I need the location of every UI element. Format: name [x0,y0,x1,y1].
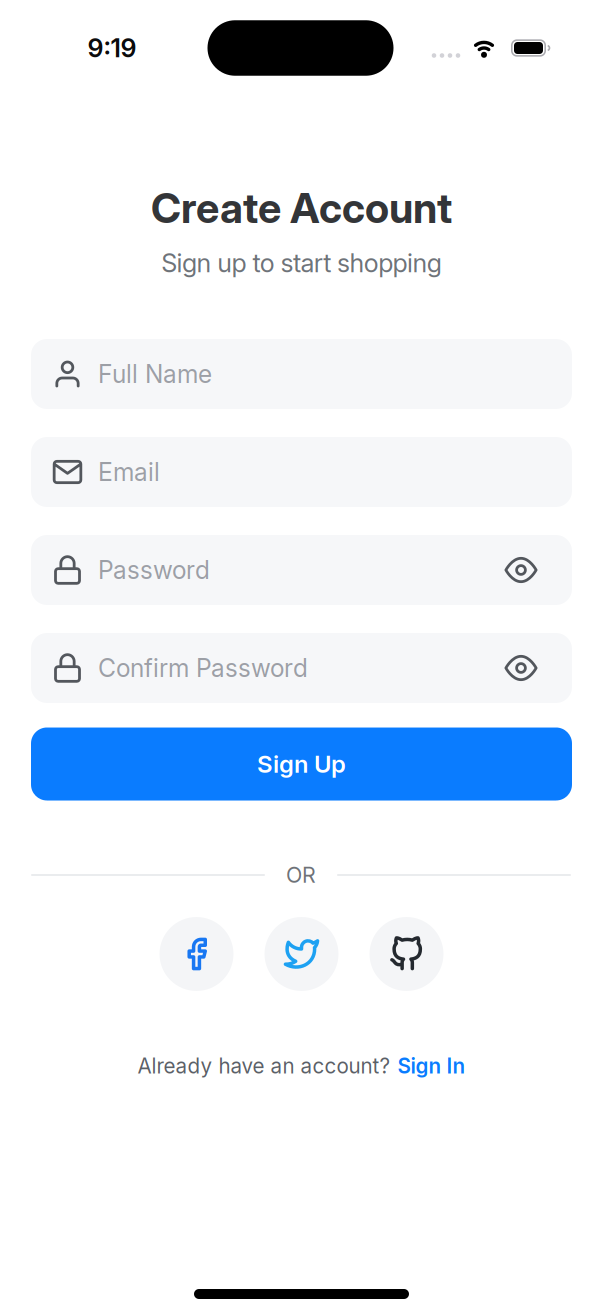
button[interactable]: Full Name [31,339,572,409]
button[interactable]: Sign up with Facebook [159,917,233,991]
staticText: Full Name [98,359,212,389]
button[interactable]: Sign up with Twitter [264,917,338,991]
staticText: OR [286,862,316,888]
staticText: Already have an account? [137,1053,390,1078]
staticText: Confirm Password [98,653,308,683]
staticText: Create Account [151,183,452,233]
button[interactable]: Confirm Password [31,633,572,703]
staticText: Email [98,457,160,487]
button[interactable]: Password [31,535,572,605]
staticText: 9:19 [87,33,136,63]
button[interactable]: Sign up with GitHub [369,917,443,991]
button[interactable]: Sign In [397,1053,465,1078]
button[interactable]: Show password [504,651,537,684]
button[interactable]: Show password [504,553,537,586]
staticText: Sign Up [257,749,346,778]
button[interactable]: Sign Up [31,727,572,800]
staticText: Password [98,555,210,585]
button[interactable]: Email [31,437,572,507]
staticText: Sign In [397,1053,465,1078]
staticText: Sign up to start shopping [161,248,442,278]
